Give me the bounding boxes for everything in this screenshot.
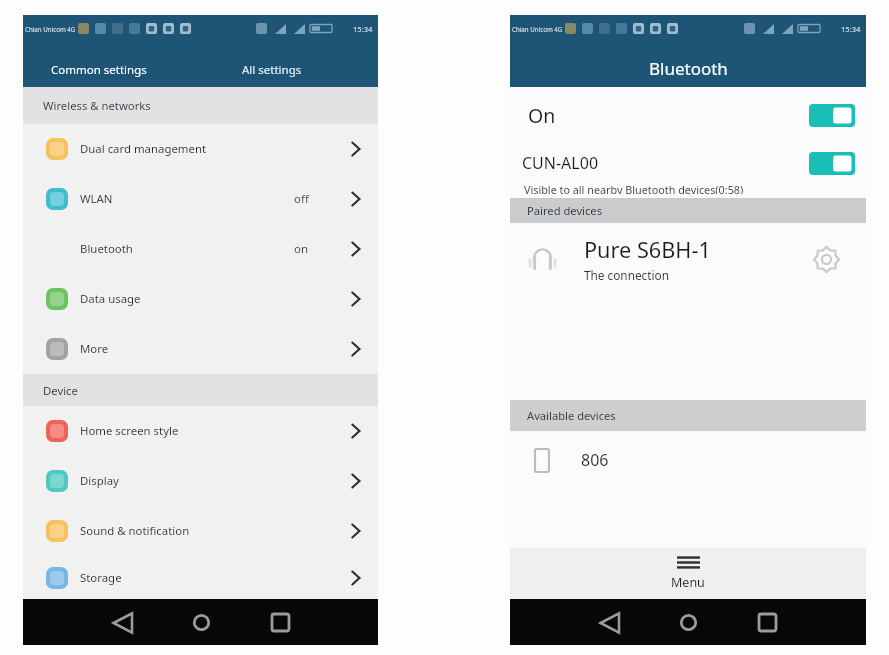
button[interactable]: Menu <box>510 548 866 599</box>
button[interactable]: Pure S6BH-1 <box>510 223 866 295</box>
staticText: 806 <box>581 449 609 471</box>
staticText: On <box>528 102 556 129</box>
staticText: More <box>80 341 109 357</box>
staticText: Visible to all nearby Bluetooth devices(… <box>524 182 744 194</box>
staticText: Pure S6BH-1 <box>584 235 711 265</box>
staticText: WLAN <box>80 191 113 207</box>
staticText: All settings <box>242 62 302 78</box>
staticText: The connection <box>584 267 669 283</box>
staticText: Home screen style <box>80 423 179 439</box>
staticText: Dual card management <box>80 141 207 157</box>
button[interactable] <box>809 104 855 127</box>
staticText: Chian Unicom 4G <box>512 25 563 33</box>
button[interactable]: WLAN <box>23 174 378 224</box>
staticText: Sound & notification <box>80 523 190 539</box>
button[interactable]: Home <box>666 600 711 645</box>
button[interactable]: CUN-AL00 <box>510 144 866 182</box>
staticText: Display <box>80 473 119 489</box>
staticText: on <box>294 241 309 257</box>
staticText: Menu <box>671 574 705 591</box>
staticText: off <box>294 191 309 207</box>
staticText: Common settings <box>51 62 147 78</box>
button[interactable]: Data usage <box>23 274 378 324</box>
button[interactable]: Display <box>23 456 378 506</box>
button[interactable]: Device settings <box>812 245 840 273</box>
button[interactable]: Storage <box>23 556 378 599</box>
staticText: Paired devices <box>527 203 603 218</box>
staticText: Storage <box>80 570 122 586</box>
button[interactable]: On <box>510 87 866 144</box>
button[interactable]: Dual card management <box>23 124 378 174</box>
button[interactable]: Bluetooth <box>23 224 378 274</box>
staticText: Device <box>43 383 78 398</box>
staticText: Available devices <box>527 408 616 423</box>
button[interactable]: Home <box>179 600 224 645</box>
button[interactable]: Common settings <box>23 52 174 87</box>
button[interactable]: Recents <box>745 600 790 645</box>
staticText: Chian Unicom 4G <box>25 25 76 33</box>
staticText: Bluetooth <box>649 57 728 80</box>
button[interactable]: Home screen style <box>23 406 378 456</box>
button[interactable]: More <box>23 324 378 374</box>
staticText: 15:34 <box>841 24 861 34</box>
button[interactable]: Back <box>587 600 632 645</box>
button[interactable]: Back <box>100 600 145 645</box>
staticText: Bluetooth <box>80 241 133 257</box>
button[interactable]: All settings <box>174 52 370 87</box>
button[interactable]: Sound & notification <box>23 506 378 556</box>
staticText: 15:34 <box>353 24 373 34</box>
button[interactable]: Recents <box>258 600 303 645</box>
staticText: Wireless & networks <box>43 98 151 113</box>
staticText: CUN-AL00 <box>522 152 599 174</box>
button[interactable]: 806 <box>510 431 866 489</box>
staticText: Data usage <box>80 291 141 307</box>
button[interactable] <box>809 152 855 175</box>
